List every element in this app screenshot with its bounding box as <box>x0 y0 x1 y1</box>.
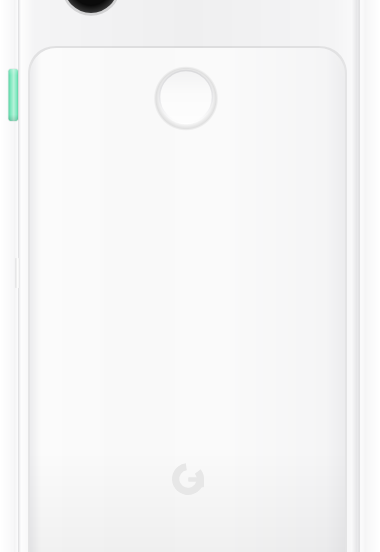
button[interactable]: Pixel phone back view <box>0 0 380 552</box>
